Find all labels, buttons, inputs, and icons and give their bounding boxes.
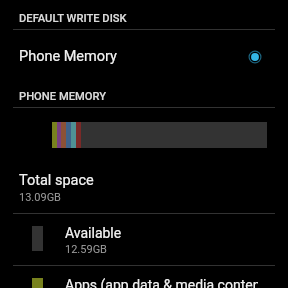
other: Phone Memory selected — [245, 47, 265, 67]
staticText: Available — [65, 225, 258, 241]
staticText: Total space — [19, 172, 94, 189]
staticText: 13.09GB — [19, 191, 61, 204]
button[interactable]: Available — [0, 213, 288, 265]
button[interactable]: Phone Memory — [0, 30, 288, 82]
button[interactable]: Apps (app data & media content) — [0, 265, 288, 288]
staticText: Apps (app data & media content) — [65, 277, 258, 288]
staticText: DEFAULT WRITE DISK — [19, 12, 127, 25]
staticText: Phone Memory — [19, 48, 117, 65]
staticText: 12.59GB — [65, 243, 107, 256]
staticText: PHONE MEMORY — [19, 90, 107, 103]
button[interactable]: Total space — [0, 161, 288, 213]
